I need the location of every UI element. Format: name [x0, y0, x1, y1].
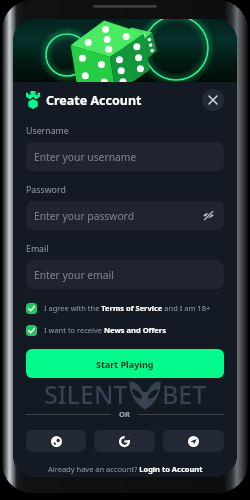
- staticText: Email: [26, 243, 49, 255]
- button[interactable]: Enter your username: [26, 142, 224, 171]
- staticText: Enter your password: [34, 209, 134, 223]
- button[interactable]: I want to receive News and Offers: [26, 324, 224, 336]
- button[interactable]: Sign in with Steam: [26, 430, 86, 452]
- staticText: I agree with the Terms of Service and I …: [44, 303, 211, 313]
- staticText: Username: [26, 125, 69, 137]
- button[interactable]: Already have an account? Login to Accoun…: [26, 464, 224, 474]
- button[interactable]: Start Playing: [26, 349, 224, 378]
- button[interactable]: I agree with the Terms of Service and I …: [26, 302, 224, 314]
- staticText: Enter your username: [34, 150, 137, 164]
- staticText: Already have an account? Login to Accoun…: [48, 464, 203, 474]
- staticText: Enter your email: [34, 268, 114, 282]
- other: Show password: [203, 210, 214, 221]
- staticText: OR: [119, 409, 130, 419]
- staticText: SILENT: [44, 377, 128, 411]
- staticText: BET: [162, 377, 207, 411]
- button[interactable]: Enter your password: [26, 201, 224, 230]
- staticText: Start Playing: [96, 358, 154, 370]
- button[interactable]: Sign in with Telegram: [163, 430, 224, 452]
- staticText: I want to receive News and Offers: [44, 325, 166, 335]
- button[interactable]: Close: [202, 89, 224, 111]
- button[interactable]: Enter your email: [26, 260, 224, 289]
- staticText: Create Account: [46, 92, 142, 109]
- button[interactable]: Sign in with Google: [94, 430, 155, 452]
- staticText: Password: [26, 184, 66, 196]
